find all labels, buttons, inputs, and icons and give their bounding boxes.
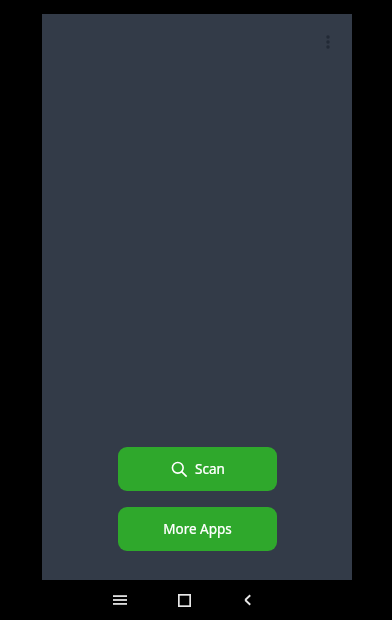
staticText: More Apps (163, 520, 232, 538)
button[interactable]: Scan (118, 447, 277, 491)
button[interactable]: Home (164, 580, 204, 620)
button[interactable]: Menu (100, 580, 140, 620)
button[interactable]: More Apps (118, 507, 277, 551)
staticText: Scan (195, 460, 225, 478)
button[interactable]: Back (228, 580, 268, 620)
